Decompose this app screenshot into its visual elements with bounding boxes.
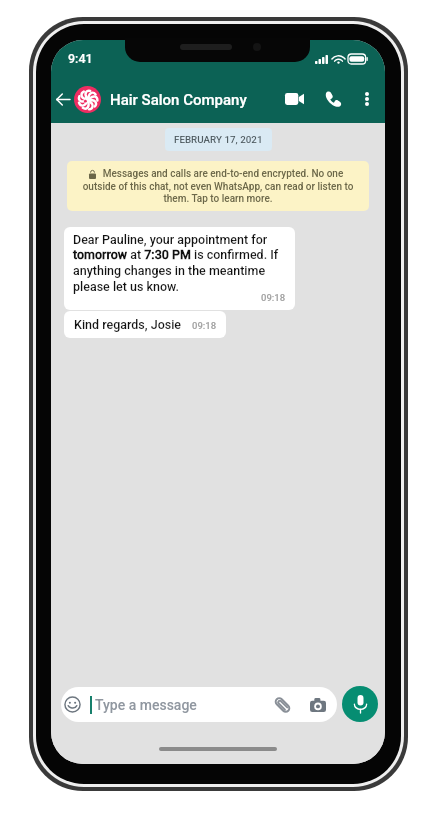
button[interactable]: Type a message bbox=[61, 687, 337, 722]
staticText: Hair Salon Company bbox=[110, 91, 247, 109]
staticText: Dear Pauline, your appointment for tomor… bbox=[73, 232, 286, 294]
button[interactable]: Call bbox=[315, 78, 351, 120]
staticText: Type a message bbox=[95, 697, 197, 713]
button[interactable]: Profile photo bbox=[74, 86, 101, 113]
button[interactable]: FEBRUARY 17, 2021 bbox=[165, 128, 272, 151]
staticText: Messages and calls are end-to-end encryp… bbox=[79, 168, 357, 204]
button[interactable]: Dear Pauline, your appointment for tomor… bbox=[64, 227, 295, 310]
staticText: Kind regards, Josie bbox=[74, 317, 182, 332]
button[interactable]: More options bbox=[351, 78, 383, 120]
staticText: 9:41 bbox=[68, 51, 93, 66]
button[interactable]: Messages and calls are end-to-end encryp… bbox=[67, 161, 369, 211]
staticText: 09:18 bbox=[192, 320, 217, 331]
staticText: 09:18 bbox=[261, 292, 286, 302]
staticText: FEBRUARY 17, 2021 bbox=[174, 134, 263, 145]
button[interactable]: Kind regards, Josie bbox=[64, 311, 226, 338]
button[interactable]: Record voice message bbox=[342, 686, 378, 722]
button[interactable]: Video call bbox=[273, 78, 315, 120]
button[interactable]: Back bbox=[52, 80, 74, 118]
